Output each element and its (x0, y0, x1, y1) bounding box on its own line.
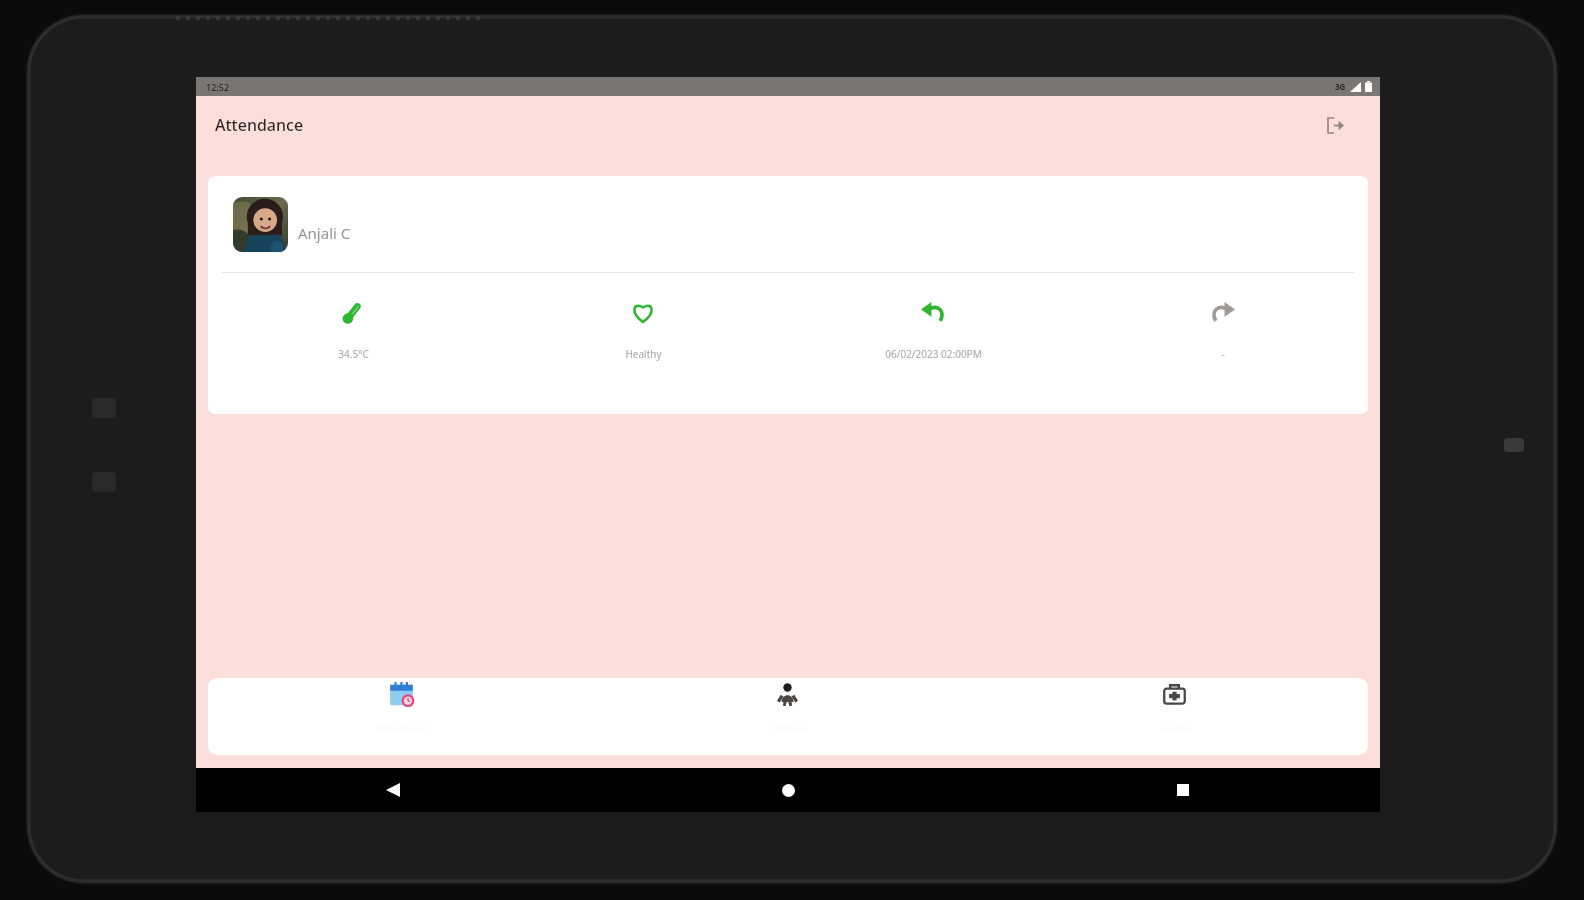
button[interactable]: Anjali C (208, 176, 1368, 414)
button[interactable]: Health (981, 678, 1368, 755)
button[interactable]: Children (594, 678, 981, 755)
button[interactable]: Home (768, 770, 808, 810)
staticText: 34.5°C (338, 347, 369, 361)
staticText: Healthy (625, 347, 662, 361)
staticText: - (1221, 347, 1225, 361)
button[interactable]: Logout (1320, 110, 1350, 140)
button[interactable]: Healthy (498, 273, 788, 414)
staticText: 3G (1335, 81, 1346, 92)
button[interactable]: Attendance (208, 678, 594, 755)
staticText: 06/02/2023 02:00PM (885, 347, 982, 361)
button[interactable]: 34.5°C (208, 273, 498, 414)
staticText: Attendance (215, 114, 304, 136)
button[interactable]: Recents (1163, 770, 1203, 810)
button[interactable]: Back (373, 770, 413, 810)
button[interactable]: 06/02/2023 02:00PM (788, 273, 1078, 414)
button[interactable]: - (1078, 273, 1368, 414)
staticText: 12:52 (206, 81, 230, 93)
staticText: Anjali C (298, 223, 351, 243)
